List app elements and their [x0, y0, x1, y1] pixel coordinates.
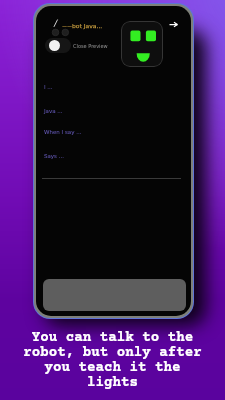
button[interactable]: Java ...	[36, 104, 191, 118]
staticText: ~~bot Java...	[62, 22, 103, 29]
button[interactable]: When I say ...	[36, 125, 191, 139]
staticText: Close Preview	[73, 43, 108, 49]
staticText: When I say ...	[44, 129, 82, 135]
staticText: You can talk to the robot, but only afte…	[23, 330, 202, 391]
button[interactable]: Robot avatar	[121, 21, 163, 67]
button[interactable]: Close Preview	[45, 38, 108, 53]
staticText: I ...	[44, 84, 53, 90]
staticText: Java ...	[44, 108, 63, 114]
button[interactable]: Keyboard area	[43, 279, 186, 311]
staticText: Says ...	[44, 153, 64, 159]
button[interactable]: I ...	[36, 80, 191, 94]
button[interactable]: Says ...	[36, 149, 191, 163]
button[interactable]: Forward	[165, 16, 182, 33]
